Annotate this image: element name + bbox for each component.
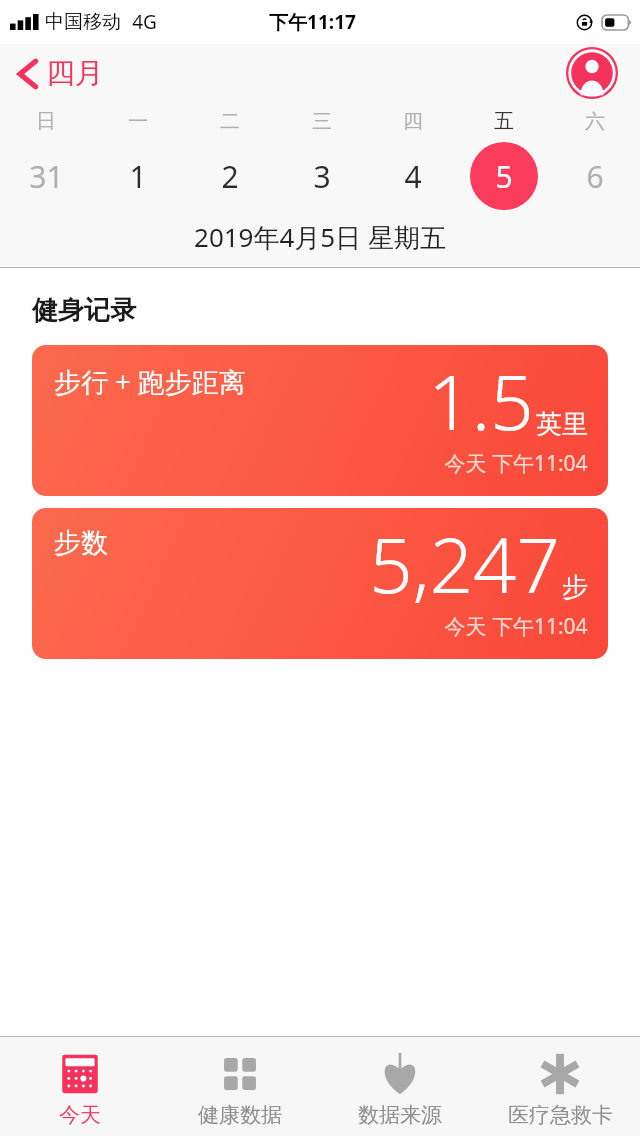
button[interactable]: 6	[564, 145, 626, 207]
staticText: 六	[585, 109, 605, 134]
button[interactable]: 数据来源	[320, 1037, 480, 1136]
staticText: 四	[403, 109, 423, 134]
button[interactable]: 5	[470, 142, 538, 210]
button[interactable]: 步数	[32, 508, 608, 659]
button[interactable]: 2	[199, 145, 261, 207]
button[interactable]: 3	[291, 145, 353, 207]
staticText: 31	[29, 156, 64, 197]
button[interactable]: 四月	[14, 51, 108, 96]
staticText: 4	[404, 156, 422, 197]
staticText: 日	[36, 109, 56, 134]
staticText: 健康数据	[198, 1102, 282, 1128]
staticText: 5	[495, 156, 513, 197]
button[interactable]: 健康数据	[160, 1037, 320, 1136]
staticText: 步	[562, 571, 588, 604]
staticText: 2019年4月5日 星期五	[194, 219, 446, 255]
staticText: 步数	[54, 526, 108, 560]
staticText: 3	[313, 156, 331, 197]
button[interactable]: 步行 + 跑步距离	[32, 345, 608, 496]
button[interactable]: Profile	[566, 47, 618, 99]
button[interactable]: 31	[15, 145, 77, 207]
staticText: 医疗急救卡	[508, 1102, 613, 1128]
staticText: 一	[128, 109, 148, 134]
staticText: 五	[494, 109, 514, 134]
staticText: 1.5	[428, 349, 534, 453]
staticText: 4G	[132, 9, 157, 35]
staticText: 今天	[59, 1102, 101, 1128]
staticText: 2	[221, 156, 239, 197]
staticText: 今天 下午11:04	[444, 449, 588, 478]
staticText: 二	[220, 109, 240, 134]
staticText: 健身记录	[32, 294, 136, 327]
staticText: 下午11:17	[269, 9, 356, 35]
staticText: 5,247	[369, 512, 560, 616]
button[interactable]: 今天	[0, 1037, 160, 1136]
button[interactable]: 1	[107, 145, 169, 207]
button[interactable]: 医疗急救卡	[480, 1037, 640, 1136]
staticText: 中国移动	[45, 10, 121, 34]
button[interactable]: 4	[382, 145, 444, 207]
staticText: 1	[129, 156, 147, 197]
staticText: 今天 下午11:04	[444, 612, 588, 641]
staticText: 四月	[46, 55, 104, 92]
staticText: 三	[312, 109, 332, 134]
staticText: 数据来源	[358, 1102, 442, 1128]
staticText: 英里	[536, 408, 588, 441]
staticText: 6	[586, 156, 604, 197]
staticText: 步行 + 跑步距离	[54, 363, 246, 400]
